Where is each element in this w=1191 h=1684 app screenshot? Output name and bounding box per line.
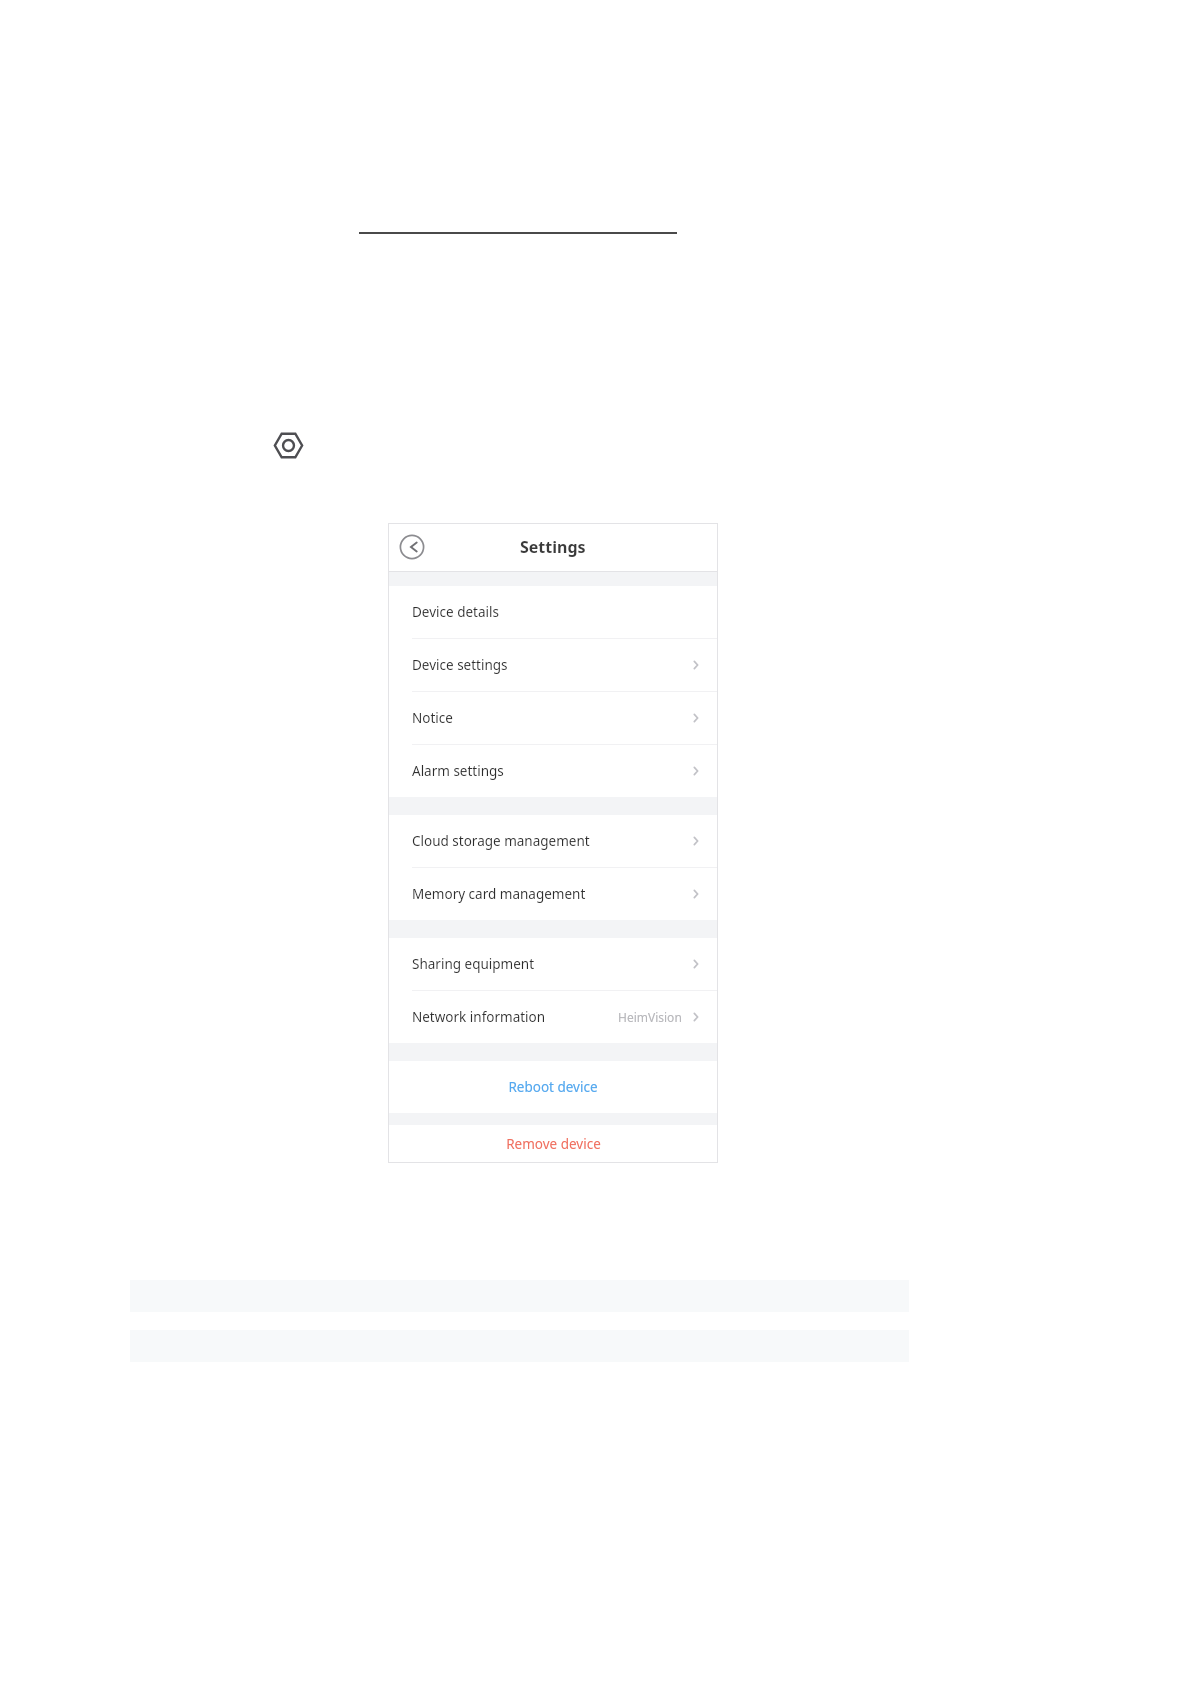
button[interactable]: Sharing equipment — [388, 938, 718, 990]
staticText: Cloud storage management — [412, 832, 590, 850]
button[interactable]: Cloud storage management — [388, 815, 718, 867]
button[interactable]: Device settings — [388, 639, 718, 691]
button[interactable]: Reboot device — [388, 1061, 718, 1113]
button[interactable]: Notice — [388, 692, 718, 744]
button[interactable]: Network information — [388, 991, 718, 1043]
staticText: Alarm settings — [412, 762, 504, 780]
staticText: Notice — [412, 709, 453, 727]
button[interactable]: Back — [399, 534, 425, 560]
staticText: HeimVision — [618, 1009, 682, 1025]
button[interactable]: Device details — [388, 586, 718, 638]
button[interactable]: Alarm settings — [388, 745, 718, 797]
staticText: Device details — [412, 603, 499, 621]
button[interactable]: Remove device — [388, 1125, 718, 1163]
staticText: Memory card management — [412, 885, 586, 903]
staticText: Network information — [412, 1008, 546, 1026]
button[interactable]: Memory card management — [388, 868, 718, 920]
staticText: Sharing equipment — [412, 955, 535, 973]
staticText: Device settings — [412, 656, 508, 674]
staticText: Reboot device — [508, 1078, 598, 1096]
staticText: Remove device — [506, 1135, 601, 1153]
button[interactable]: Settings — [273, 430, 304, 461]
staticText: Settings — [520, 536, 586, 558]
